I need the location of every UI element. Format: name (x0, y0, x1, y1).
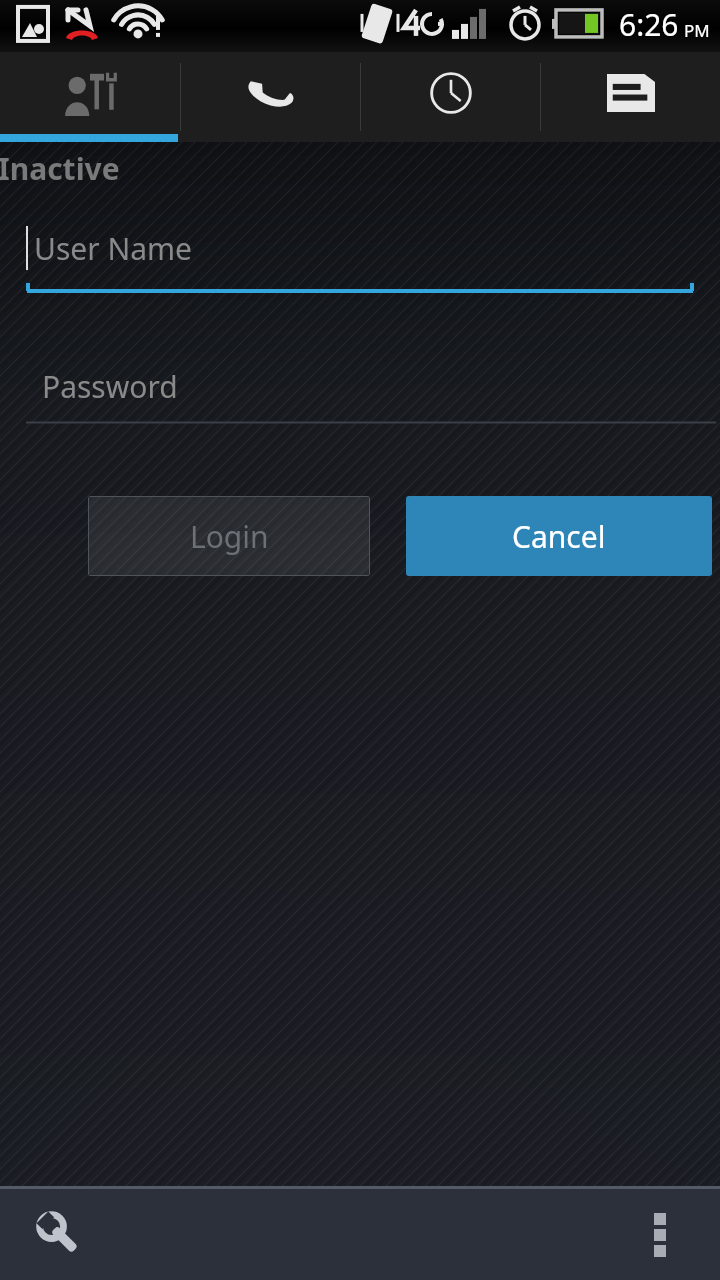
button[interactable]: Cancel (406, 496, 712, 576)
button[interactable]: Dialer (181, 52, 360, 142)
button[interactable]: User Name (26, 226, 694, 294)
staticText: Password (42, 366, 178, 407)
staticText: Cancel (512, 516, 606, 557)
staticText: Login (190, 516, 269, 557)
button[interactable]: Contacts (0, 52, 180, 142)
staticText: 6:26 (619, 4, 679, 45)
button[interactable]: Messages (541, 52, 720, 142)
staticText: Inactive (0, 148, 120, 189)
button[interactable]: Recents (361, 52, 540, 142)
button[interactable]: More options (618, 1193, 702, 1277)
button[interactable]: Password (26, 366, 716, 425)
button[interactable]: Login (88, 496, 370, 576)
staticText: PM (684, 19, 710, 42)
staticText: User Name (34, 228, 193, 269)
button[interactable]: Settings (18, 1193, 102, 1277)
